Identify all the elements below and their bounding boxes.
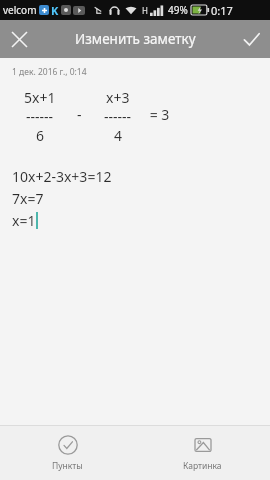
staticText: Пункты (52, 460, 83, 472)
staticText: 6 (36, 126, 45, 145)
staticText: ------ (26, 107, 54, 126)
button[interactable]: Save (232, 20, 270, 58)
staticText: 1 дек. 2016 г., 0:14 (12, 66, 87, 78)
staticText: x=1 (12, 211, 36, 230)
staticText: Картинка (183, 460, 222, 472)
staticText: 49% (168, 3, 188, 17)
staticText: = 3 (146, 105, 170, 124)
staticText: x+3 (106, 88, 130, 107)
button[interactable]: Пункты (0, 427, 135, 480)
staticText: 0:17 (211, 3, 233, 18)
staticText: 4 (114, 126, 123, 145)
staticText: 5x+1 (24, 88, 56, 107)
staticText: K (51, 3, 59, 18)
button[interactable]: Картинка (135, 427, 270, 480)
staticText: 10x+2-3x+3=12 (12, 167, 112, 186)
staticText: velcom (3, 3, 37, 17)
staticText: H (142, 5, 148, 16)
staticText: 7x=7 (12, 189, 44, 208)
staticText: - (77, 105, 82, 124)
staticText: ------ (104, 107, 132, 126)
button[interactable]: Close (0, 20, 38, 58)
staticText: Изменить заметку (75, 30, 196, 48)
